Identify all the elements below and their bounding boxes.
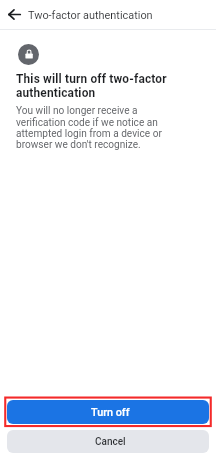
staticText: You will no longer receive a verificatio… xyxy=(16,105,172,150)
button[interactable]: Back xyxy=(1,1,28,28)
button[interactable]: Cancel xyxy=(7,430,209,453)
staticText: Turn off xyxy=(91,406,130,419)
staticText: Two-factor authentication xyxy=(28,9,153,22)
staticText: Cancel xyxy=(95,436,126,448)
staticText: This will turn off two-factor authentica… xyxy=(16,72,196,100)
button[interactable]: Turn off xyxy=(7,400,209,424)
